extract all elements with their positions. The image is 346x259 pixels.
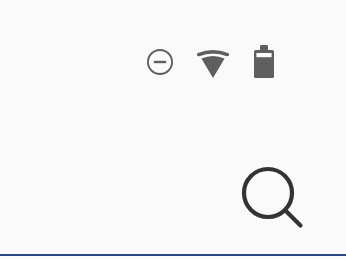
button[interactable]: Do not disturb xyxy=(144,46,176,78)
button[interactable]: Battery xyxy=(250,41,278,81)
button[interactable]: Search xyxy=(236,161,312,237)
button[interactable]: Wi-Fi connected xyxy=(196,46,230,80)
